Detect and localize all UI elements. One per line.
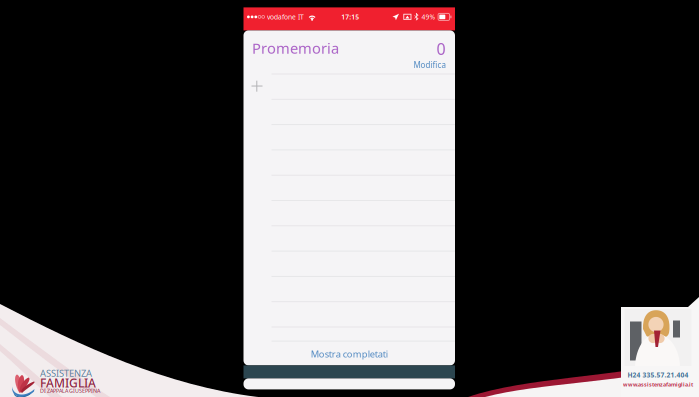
staticText: Promemoria	[252, 38, 339, 58]
staticText: H24 335.57.21.404	[627, 370, 688, 379]
staticText: vodafone IT	[267, 12, 304, 21]
staticText: 17:15	[341, 12, 359, 21]
staticText: 49%	[422, 12, 436, 21]
button[interactable]: Nuovo promemoria	[243, 73, 455, 99]
staticText: FAMIGLIA	[40, 375, 96, 391]
button[interactable]: Mostra completati	[243, 342, 455, 366]
staticText: DI ZAPPALA GIUSEPPINA	[40, 387, 100, 394]
staticText: 0	[436, 38, 445, 59]
staticText: Modifica	[413, 59, 445, 70]
staticText: ASSISTENZA	[40, 367, 92, 379]
staticText: www.assistenzafamiglia.it	[623, 381, 693, 388]
button[interactable]: Modifica	[407, 59, 445, 71]
staticText: Mostra completati	[311, 348, 388, 360]
